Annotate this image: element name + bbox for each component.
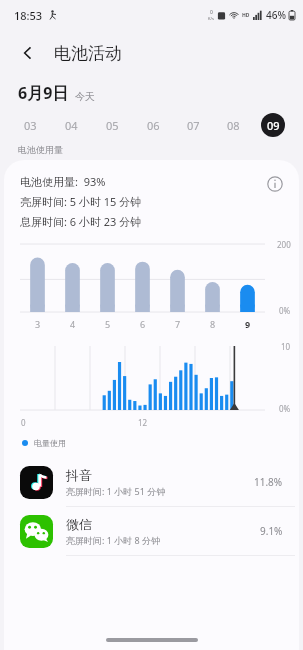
staticText: 息屏时间: 6 小时 23 分钟 (20, 214, 142, 229)
staticText: 电池使用量: 93% (20, 174, 106, 189)
staticText: 亮屏时间: 1 小时 8 分钟 (66, 534, 161, 546)
staticText: 亮屏时间: 1 小时 51 分钟 (66, 485, 166, 497)
staticText: 电量使用 (34, 438, 66, 448)
button[interactable]: 06 (133, 108, 173, 142)
staticText: 12 (138, 417, 148, 428)
button[interactable]: 05 (92, 108, 133, 142)
staticText: 07 (187, 118, 200, 133)
staticText: 8 (210, 318, 216, 330)
staticText: K/s (208, 16, 214, 21)
button[interactable]: 返回 (12, 37, 44, 69)
staticText: 0% (279, 305, 291, 316)
staticText: 6月9日 (18, 82, 69, 104)
staticText: 18:53 (14, 8, 43, 23)
staticText: 7 (175, 318, 181, 330)
button[interactable]: 09 (253, 108, 293, 142)
staticText: 6 (140, 318, 146, 330)
button[interactable]: 03 (10, 108, 51, 142)
staticText: 电池使用量 (18, 144, 63, 155)
staticText: 0 (21, 417, 26, 428)
staticText: 200 (277, 239, 291, 250)
staticText: 08 (227, 118, 240, 133)
button[interactable]: 抖音 (4, 458, 299, 506)
staticText: 今天 (75, 90, 95, 103)
staticText: 05 (106, 118, 119, 133)
button[interactable]: 微信 (4, 507, 299, 555)
staticText: 09 (267, 118, 280, 133)
staticText: 03 (24, 118, 37, 133)
button[interactable]: 07 (173, 108, 213, 142)
staticText: 亮屏时间: 5 小时 15 分钟 (20, 194, 142, 209)
staticText: 9.1% (260, 524, 283, 538)
staticText: 0% (279, 403, 291, 414)
button[interactable]: 04 (51, 108, 92, 142)
staticText: HD (242, 12, 250, 19)
button[interactable]: 信息 (263, 172, 287, 196)
staticText: 0 (210, 9, 213, 16)
staticText: 06 (147, 118, 160, 133)
staticText: 电池活动 (54, 43, 122, 64)
staticText: 9 (245, 318, 251, 330)
staticText: 3 (35, 318, 41, 330)
staticText: 抖音 (66, 467, 92, 483)
staticText: 04 (65, 118, 78, 133)
staticText: 4 (70, 318, 76, 330)
staticText: 46% (266, 8, 286, 22)
staticText: 11.8% (254, 475, 283, 489)
staticText: 10 (281, 341, 291, 352)
button[interactable]: 08 (213, 108, 253, 142)
staticText: 微信 (66, 516, 92, 532)
staticText: 5 (105, 318, 111, 330)
